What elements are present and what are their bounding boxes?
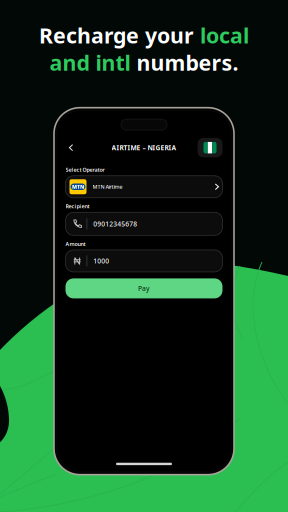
staticText: MTN Airtime — [92, 183, 122, 190]
staticText: 1000 — [93, 256, 109, 265]
staticText: and intl — [49, 48, 130, 77]
staticText: Recipient — [65, 203, 89, 210]
staticText: Amount — [65, 240, 85, 247]
button[interactable]: Nigeria — [197, 138, 222, 157]
button[interactable]: MTN — [65, 176, 222, 198]
staticText: MTN — [72, 183, 84, 190]
button[interactable]: Back — [65, 140, 76, 156]
staticText: AIRTIME – NIGERIA — [111, 143, 176, 152]
staticText: Pay — [138, 284, 150, 293]
button[interactable]: Pay — [65, 278, 222, 298]
button[interactable]: 09012345678 — [65, 212, 222, 235]
staticText: local — [200, 21, 249, 49]
button[interactable]: 1000 — [65, 250, 222, 272]
staticText: Select Operator — [65, 166, 104, 173]
staticText: numbers. — [130, 48, 238, 77]
staticText: 09012345678 — [93, 219, 137, 228]
staticText: Recharge your — [39, 21, 200, 49]
